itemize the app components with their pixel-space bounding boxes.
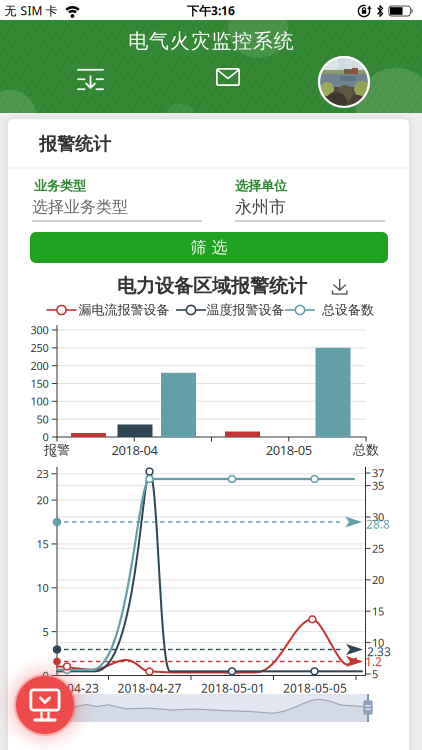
staticText: 0 (42, 429, 48, 444)
staticText: 温度报警设备 (206, 302, 284, 318)
staticText: 28.8 (366, 516, 390, 532)
staticText: 50 (36, 412, 48, 427)
staticText: 15 (372, 604, 384, 619)
staticText: 5 (42, 624, 48, 639)
button[interactable]: 筛选 (68, 59, 113, 100)
staticText: 总设备数 (322, 302, 374, 318)
staticText: 250 (30, 340, 48, 355)
staticText: 10 (36, 580, 48, 595)
staticText: 25 (372, 541, 384, 556)
staticText: 30 (372, 509, 384, 524)
staticText: 漏电流报警设备 (78, 302, 169, 318)
staticText: 无 SIM 卡 (4, 2, 57, 19)
button[interactable]: 缩放手柄 (363, 700, 373, 715)
button[interactable]: 监控大屏 (16, 676, 74, 734)
button[interactable]: 选择业务类型 (32, 196, 202, 230)
staticText: 20 (36, 493, 48, 508)
staticText: 300 (30, 322, 48, 337)
staticText: 37 (372, 465, 384, 480)
staticText: 电力设备区域报警统计 (117, 274, 307, 298)
staticText: 下午3:16 (187, 2, 235, 19)
button[interactable]: 下载图表 (325, 272, 354, 301)
staticText: 1.2 (365, 653, 382, 670)
staticText: 23 (36, 466, 48, 481)
staticText: 选择业务类型 (32, 197, 128, 217)
staticText: 电气火灾监控系统 (128, 28, 294, 54)
staticText: 2018-04 (111, 441, 157, 459)
staticText: 20 (372, 572, 384, 587)
button[interactable]: 永州市 (235, 196, 385, 230)
staticText: 总数 (353, 442, 379, 458)
staticText: 2018-05-01 (201, 680, 265, 696)
button[interactable]: 筛 选 (30, 232, 388, 263)
staticText: 报警 (44, 442, 70, 458)
staticText: 10 (372, 635, 384, 650)
staticText: 报警统计 (39, 133, 111, 155)
staticText: 15 (36, 536, 48, 551)
staticText: 150 (30, 376, 48, 391)
button[interactable]: 消息 (205, 57, 251, 97)
staticText: 业务类型 (34, 178, 86, 194)
staticText: 2018-05-05 (283, 680, 347, 696)
staticText: 选择单位 (235, 178, 287, 194)
staticText: 0 (42, 668, 48, 683)
staticText: 200 (30, 358, 48, 373)
staticText: 100 (30, 394, 48, 409)
button[interactable]: 个人中心 (318, 56, 370, 108)
staticText: 永州市 (235, 196, 286, 218)
staticText: 35 (372, 478, 384, 493)
staticText: 2018-04-23 (35, 680, 99, 696)
staticText: 2018-04-27 (117, 680, 181, 696)
staticText: 5 (372, 666, 378, 681)
staticText: 筛 选 (190, 237, 227, 258)
staticText: 2.33 (367, 643, 391, 660)
staticText: 2018-05 (266, 441, 312, 459)
